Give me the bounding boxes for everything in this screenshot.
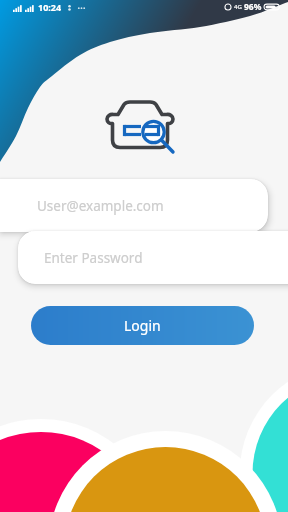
- button[interactable]: User@example.com: [0, 179, 268, 232]
- staticText: 4G: [234, 3, 242, 11]
- staticText: 10:24: [38, 1, 62, 13]
- staticText: Enter Password: [44, 249, 143, 267]
- staticText: 96%: [244, 1, 262, 13]
- staticText: Login: [124, 316, 161, 335]
- button[interactable]: Login: [31, 306, 254, 345]
- staticText: User@example.com: [37, 197, 164, 215]
- button[interactable]: Enter Password: [18, 231, 288, 284]
